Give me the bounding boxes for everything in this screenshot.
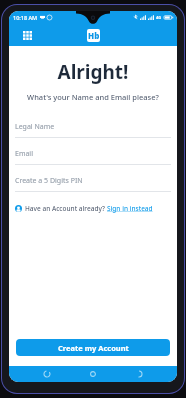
staticText: 10:18 AM xyxy=(13,14,38,21)
button[interactable]: Legal Name xyxy=(15,122,171,138)
button[interactable]: Back xyxy=(131,366,147,382)
staticText: Email xyxy=(15,149,33,159)
button[interactable]: App logo xyxy=(87,29,100,42)
staticText: What's your Name and Email please? xyxy=(15,92,171,102)
button[interactable]: Menu xyxy=(19,27,35,43)
button[interactable]: Recent apps xyxy=(39,366,55,382)
staticText: Create my Account xyxy=(58,343,129,353)
staticText: Sign in instead xyxy=(107,204,153,213)
staticText: Alright! xyxy=(15,59,171,85)
button[interactable]: Email xyxy=(15,149,171,165)
button[interactable]: Create my Account xyxy=(16,339,170,356)
staticText: Have an Account already? xyxy=(25,204,107,213)
staticText: Create a 5 Digits PIN xyxy=(15,176,83,186)
staticText: 4G xyxy=(156,15,162,20)
button[interactable]: Create a 5 Digits PIN xyxy=(15,176,171,192)
button[interactable]: Have an Account already? xyxy=(15,203,171,214)
staticText: Hb xyxy=(88,30,100,41)
staticText: Legal Name xyxy=(15,122,55,132)
button[interactable]: Home xyxy=(85,366,101,382)
